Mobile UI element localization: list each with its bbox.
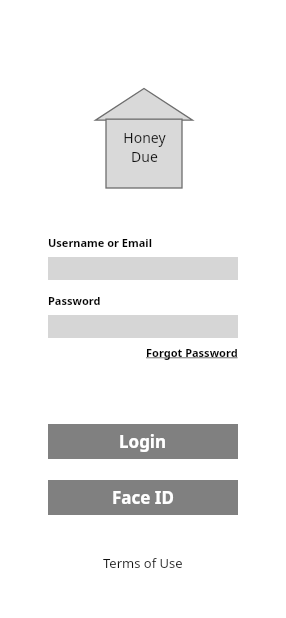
- staticText: Login: [119, 430, 167, 453]
- staticText: Password: [48, 293, 101, 308]
- button[interactable]: Terms of Use: [103, 554, 183, 572]
- staticText: Face ID: [112, 486, 174, 509]
- staticText: Username or Email: [48, 235, 152, 250]
- button[interactable]: Login: [48, 424, 238, 459]
- staticText: Due: [131, 147, 158, 166]
- staticText: Forgot Password: [146, 345, 238, 360]
- button[interactable]: Forgot Password: [146, 345, 238, 360]
- button[interactable]: Face ID: [48, 480, 238, 515]
- staticText: Honey: [123, 128, 166, 147]
- other: Honey Due logo: [94, 87, 194, 189]
- staticText: Terms of Use: [103, 554, 183, 572]
